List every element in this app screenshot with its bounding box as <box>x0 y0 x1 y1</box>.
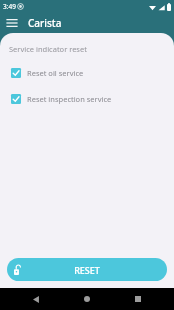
staticText: Carista <box>28 16 62 30</box>
button[interactable]: Open navigation menu <box>4 15 20 31</box>
button[interactable]: Reset inspection service <box>0 92 174 106</box>
staticText: RESET <box>7 264 167 276</box>
staticText: Reset oil service <box>27 68 84 78</box>
button[interactable]: Back <box>21 288 51 310</box>
button[interactable]: Recent apps <box>123 288 153 310</box>
button[interactable]: RESET <box>7 258 167 281</box>
button[interactable]: Home <box>72 288 102 310</box>
staticText: 3:49 <box>3 2 16 11</box>
button[interactable]: Reset oil service <box>0 66 174 80</box>
staticText: Reset inspection service <box>27 94 112 104</box>
staticText: Service indicator reset <box>9 44 87 54</box>
